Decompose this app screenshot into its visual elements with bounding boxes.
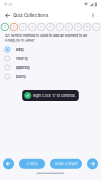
staticText: 1 bbox=[4, 25, 5, 29]
button[interactable]: Back bbox=[3, 9, 13, 22]
staticText: » bbox=[95, 25, 97, 29]
button[interactable]: Question 8 bbox=[65, 23, 73, 31]
staticText: 10:34 bbox=[4, 3, 12, 6]
button[interactable]: Question 5 bbox=[38, 23, 45, 31]
button[interactable]: insert() bbox=[0, 54, 101, 63]
button[interactable]: Question 9 bbox=[74, 23, 82, 31]
staticText: 2 bbox=[13, 25, 15, 29]
staticText: 7 bbox=[59, 25, 61, 29]
staticText: 6 bbox=[49, 25, 51, 29]
button[interactable]: Previous question bbox=[3, 158, 14, 169]
button[interactable]: Show Answer bbox=[50, 159, 82, 169]
staticText: 5 bbox=[40, 25, 42, 29]
button[interactable]: Question 6 bbox=[47, 23, 54, 31]
staticText: Q1. Which method is used to add an eleme… bbox=[5, 34, 87, 42]
button[interactable]: Question 3 bbox=[19, 23, 27, 31]
button[interactable]: Question 2 bbox=[10, 23, 18, 31]
staticText: Show Answer bbox=[54, 161, 77, 166]
staticText: Check bbox=[26, 161, 37, 166]
staticText: 3 bbox=[22, 25, 24, 29]
button[interactable]: push() bbox=[0, 72, 101, 81]
staticText: insert() bbox=[16, 56, 28, 61]
button[interactable]: Question 1 bbox=[1, 23, 9, 31]
button[interactable]: More options bbox=[88, 9, 98, 22]
button[interactable]: Check bbox=[19, 159, 45, 169]
button[interactable]: add() bbox=[0, 45, 101, 54]
button[interactable]: Question 10 bbox=[83, 23, 91, 31]
staticText: push() bbox=[16, 74, 26, 79]
staticText: 4 bbox=[31, 25, 33, 29]
staticText: append() bbox=[16, 65, 30, 70]
button[interactable]: Question 7 bbox=[56, 23, 63, 31]
staticText: Right Click 'x' to continue. bbox=[33, 93, 76, 98]
button[interactable]: Question 4 bbox=[28, 23, 36, 31]
staticText: 10 bbox=[86, 25, 89, 29]
staticText: 8 bbox=[68, 25, 70, 29]
button[interactable]: append() bbox=[0, 63, 101, 72]
staticText: Quiz: Collections bbox=[13, 13, 48, 18]
button[interactable]: Next question bbox=[87, 158, 98, 169]
staticText: add() bbox=[16, 47, 24, 52]
staticText: 9 bbox=[77, 25, 79, 29]
button[interactable]: Question » bbox=[92, 23, 100, 31]
